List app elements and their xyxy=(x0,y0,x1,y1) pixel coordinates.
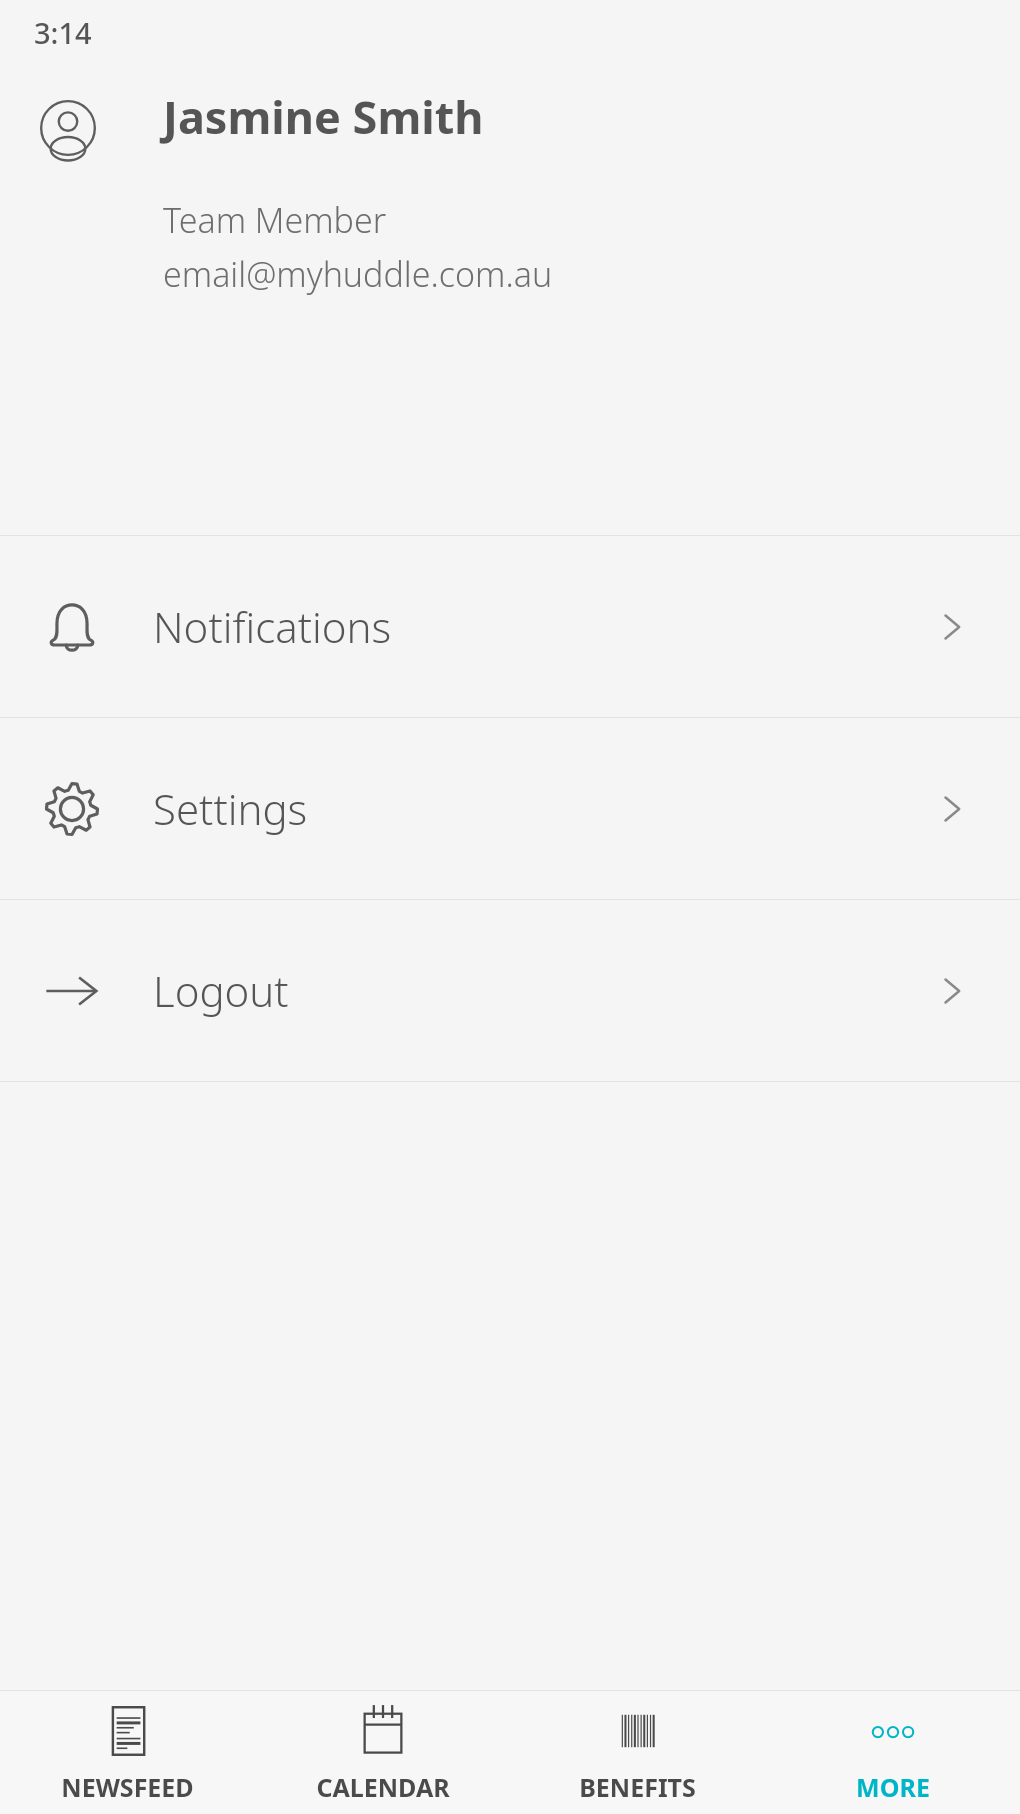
staticText: Team Member xyxy=(163,197,387,243)
button[interactable]: Notifications xyxy=(0,536,1020,717)
other: Profile avatar xyxy=(40,100,96,156)
staticText: 3:14 xyxy=(34,13,92,52)
staticText: Logout xyxy=(153,962,289,1019)
button[interactable]: Logout xyxy=(0,900,1020,1081)
button[interactable]: MORE xyxy=(765,1690,1020,1814)
button[interactable]: CALENDAR xyxy=(255,1690,510,1814)
staticText: NEWSFEED xyxy=(61,1770,194,1804)
staticText: CALENDAR xyxy=(316,1770,450,1804)
staticText: Settings xyxy=(153,780,308,837)
staticText: Notifications xyxy=(153,598,392,655)
staticText: MORE xyxy=(856,1770,930,1804)
staticText: email@myhuddle.com.au xyxy=(163,251,553,297)
staticText: BENEFITS xyxy=(579,1770,696,1804)
staticText: Jasmine Smith xyxy=(163,86,484,147)
button[interactable]: BENEFITS xyxy=(510,1690,765,1814)
button[interactable]: NEWSFEED xyxy=(0,1690,255,1814)
button[interactable]: Settings xyxy=(0,718,1020,899)
